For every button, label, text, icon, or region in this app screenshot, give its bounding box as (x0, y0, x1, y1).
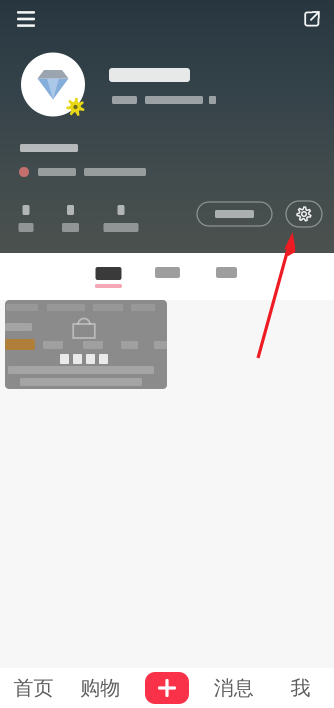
button[interactable]: 购物 (67, 668, 134, 708)
button[interactable] (48, 201, 93, 235)
button[interactable]: Share (290, 0, 334, 38)
button[interactable]: Menu (0, 0, 47, 38)
staticText: 购物 (80, 676, 120, 700)
staticText: 我 (291, 676, 311, 700)
button[interactable] (138, 253, 197, 300)
button[interactable]: 首页 (0, 668, 67, 708)
staticText: 消息 (214, 676, 254, 700)
staticText: 首页 (13, 676, 53, 700)
button[interactable]: Create post (134, 668, 200, 708)
button[interactable] (93, 201, 149, 235)
button[interactable]: Settings (286, 201, 322, 227)
button[interactable] (197, 202, 272, 226)
button[interactable] (197, 253, 256, 300)
button[interactable]: 我 (267, 668, 334, 708)
button[interactable] (79, 253, 138, 300)
button[interactable] (4, 201, 48, 235)
button[interactable] (0, 165, 146, 179)
button[interactable]: 消息 (200, 668, 267, 708)
button[interactable] (5, 300, 167, 389)
button[interactable]: Profile photo (17, 51, 89, 118)
